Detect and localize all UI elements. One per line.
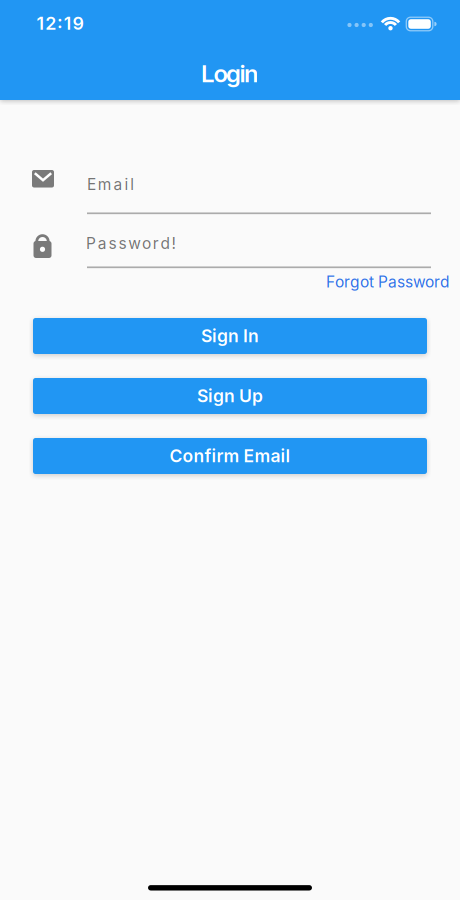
- staticText: Email: [87, 175, 134, 194]
- staticText: Login: [201, 59, 259, 88]
- staticText: 12:19: [36, 12, 84, 34]
- staticText: Forgot Password: [326, 272, 449, 291]
- staticText: Sign Up: [197, 385, 263, 407]
- staticText: Sign In: [201, 325, 259, 347]
- staticText: Password!: [86, 234, 175, 253]
- staticText: Confirm Email: [169, 445, 290, 467]
